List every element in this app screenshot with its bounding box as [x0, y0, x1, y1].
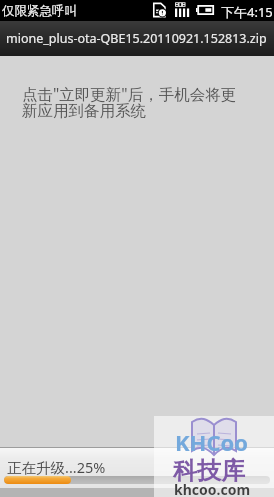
other: System update available: [153, 3, 166, 17]
staticText: 下午4:15: [221, 3, 273, 21]
other: Emergency calls only signal: [175, 2, 190, 17]
staticText: KHCoo: [175, 427, 249, 457]
button[interactable]: mione_plus-ota-QBE15.20110921.152813.zip: [0, 21, 274, 56]
staticText: mione_plus-ota-QBE15.20110921.152813.zip: [6, 30, 267, 47]
staticText: 科技库: [173, 456, 245, 486]
staticText: khcoo.com: [174, 480, 251, 497]
other: Battery: [196, 5, 214, 15]
staticText: 仅限紧急呼叫: [2, 3, 77, 19]
staticText: 正在升级...25%: [7, 457, 106, 477]
staticText: 点击"立即更新"后，手机会将更 新应用到备用系统: [22, 83, 237, 121]
